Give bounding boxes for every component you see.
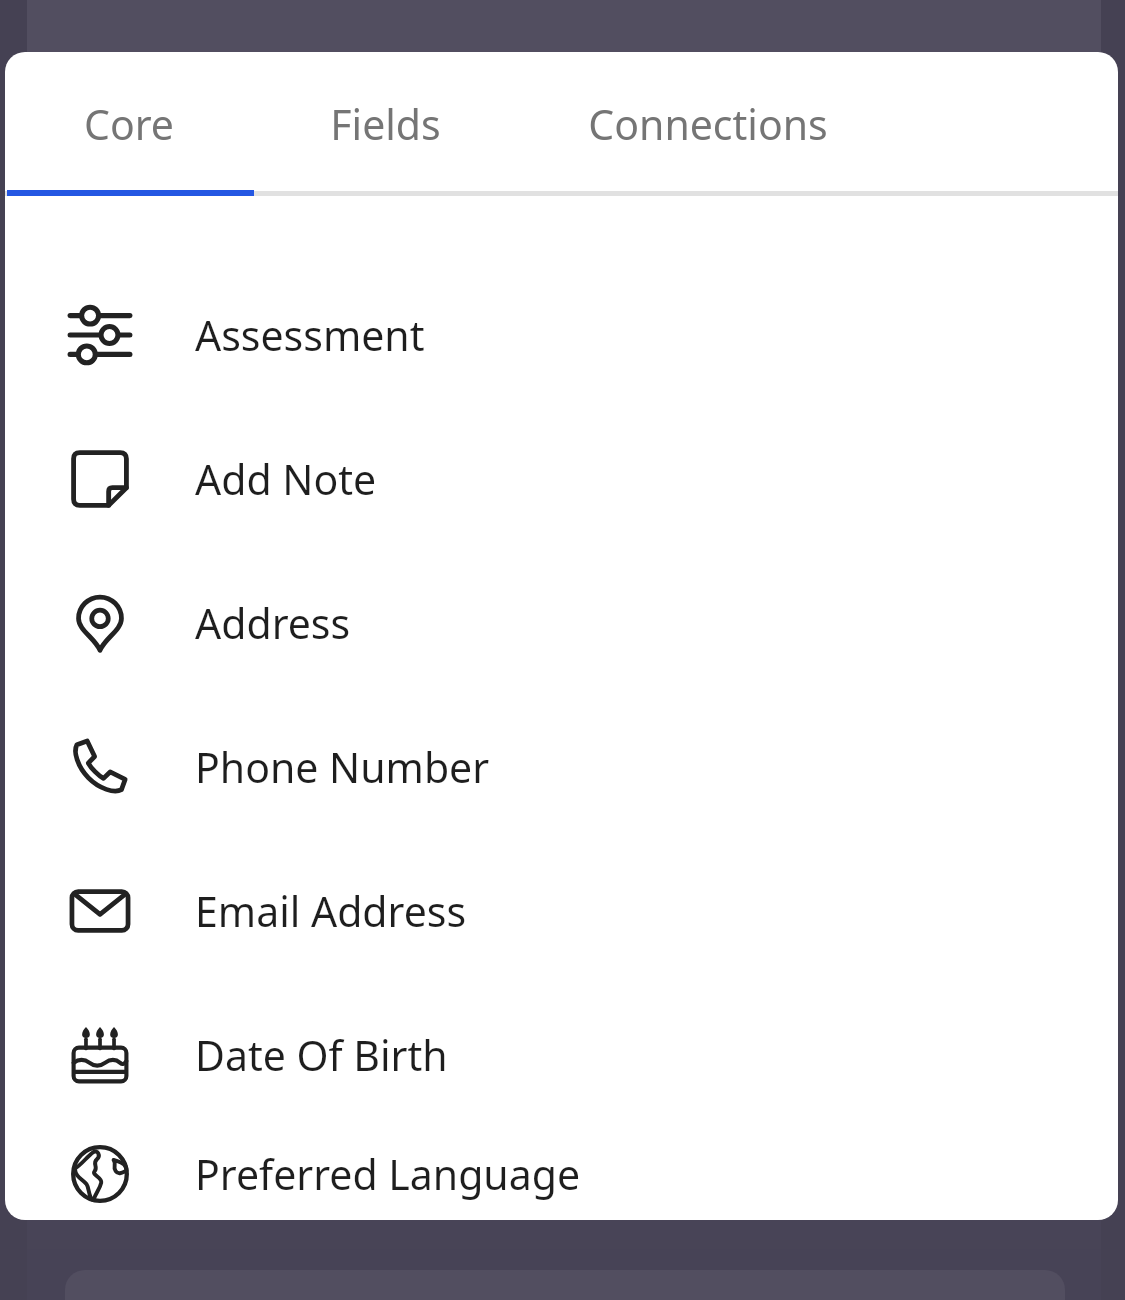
staticText: Assessment bbox=[195, 307, 425, 363]
button[interactable]: Phone Number bbox=[5, 695, 1118, 839]
other: Email Address bbox=[5, 839, 195, 983]
button[interactable]: Address bbox=[5, 551, 1118, 695]
button[interactable]: Email Address bbox=[5, 839, 1118, 983]
staticText: Preferred Language bbox=[195, 1146, 581, 1202]
staticText: Phone Number bbox=[195, 739, 490, 795]
button[interactable]: Add Note bbox=[5, 407, 1118, 551]
other: Date Of Birth bbox=[5, 983, 195, 1127]
button[interactable]: Date Of Birth bbox=[5, 983, 1118, 1127]
button[interactable]: Connections bbox=[518, 52, 898, 196]
staticText: Core bbox=[84, 96, 174, 152]
other: Add Note bbox=[5, 407, 195, 551]
staticText: Email Address bbox=[195, 883, 467, 939]
button[interactable]: Assessment bbox=[5, 263, 1118, 407]
staticText: Connections bbox=[588, 96, 828, 152]
button[interactable]: Fields bbox=[252, 52, 518, 196]
staticText: Fields bbox=[330, 96, 441, 152]
staticText: Date Of Birth bbox=[195, 1027, 448, 1083]
other: Preferred Language bbox=[5, 1127, 195, 1220]
other: Assessment bbox=[5, 263, 195, 407]
button[interactable]: Core bbox=[5, 52, 252, 196]
other: Phone Number bbox=[5, 695, 195, 839]
staticText: Address bbox=[195, 595, 351, 651]
button[interactable]: Preferred Language bbox=[5, 1127, 1118, 1220]
other: Address bbox=[5, 551, 195, 695]
staticText: Add Note bbox=[195, 451, 377, 507]
